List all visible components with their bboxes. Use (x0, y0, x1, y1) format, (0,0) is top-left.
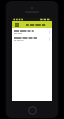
button[interactable]: Open navigation menu (14, 22, 19, 27)
button[interactable] (26, 22, 43, 27)
button[interactable]: More options (47, 35, 51, 42)
button[interactable]: Home (28, 106, 37, 115)
button[interactable]: More options (12, 35, 52, 42)
button[interactable]: More options (12, 28, 52, 35)
button[interactable]: More options (47, 28, 51, 35)
